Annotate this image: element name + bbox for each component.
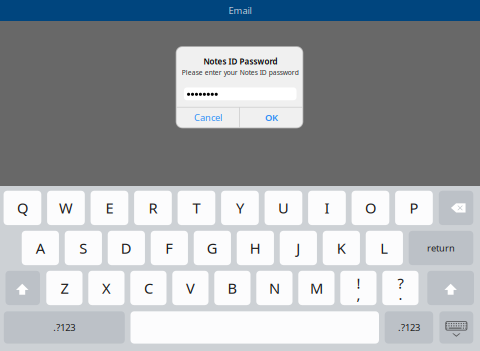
button[interactable]: X bbox=[88, 271, 124, 305]
button[interactable]: J bbox=[280, 231, 317, 265]
button[interactable]: Shift bbox=[427, 271, 474, 305]
staticText: Z bbox=[60, 278, 68, 298]
staticText: I bbox=[324, 198, 329, 218]
staticText: .?123 bbox=[398, 321, 420, 334]
staticText: B bbox=[227, 278, 237, 298]
button[interactable]: K bbox=[323, 231, 360, 265]
button[interactable]: R bbox=[134, 191, 172, 225]
button[interactable]: .?123 bbox=[385, 311, 433, 344]
staticText: O bbox=[365, 198, 376, 218]
staticText: Notes ID Password bbox=[203, 56, 277, 67]
button[interactable]: U bbox=[265, 191, 302, 225]
button[interactable]: Shift bbox=[5, 271, 40, 305]
button[interactable]: A bbox=[22, 231, 59, 265]
button[interactable]: return bbox=[409, 231, 473, 265]
button[interactable]: G bbox=[194, 231, 231, 265]
staticText: , bbox=[356, 285, 360, 304]
button[interactable]: .?123 bbox=[4, 311, 125, 344]
staticText: U bbox=[278, 198, 289, 218]
staticText: A bbox=[36, 238, 45, 258]
button[interactable]: OK bbox=[240, 107, 302, 127]
button[interactable]: T bbox=[178, 191, 215, 225]
staticText: Y bbox=[236, 198, 244, 218]
button[interactable]: I bbox=[308, 191, 346, 225]
button[interactable]: V bbox=[172, 271, 208, 305]
staticText: F bbox=[165, 238, 173, 258]
button[interactable]: Q bbox=[4, 191, 41, 225]
staticText: ? bbox=[397, 273, 403, 293]
button[interactable]: M bbox=[298, 271, 334, 305]
button[interactable] bbox=[130, 311, 379, 344]
staticText: .?123 bbox=[53, 321, 75, 334]
staticText: OK bbox=[265, 111, 278, 124]
staticText: Cancel bbox=[194, 111, 222, 124]
button[interactable]: C bbox=[130, 271, 166, 305]
staticText: ! bbox=[356, 273, 360, 293]
staticText: D bbox=[121, 238, 132, 258]
staticText: R bbox=[148, 198, 157, 218]
button[interactable]: ? bbox=[382, 271, 418, 305]
button[interactable]: H bbox=[237, 231, 274, 265]
button[interactable]: ! bbox=[340, 271, 376, 305]
staticText: C bbox=[144, 278, 153, 298]
staticText: S bbox=[79, 238, 87, 258]
staticText: Please enter your Notes ID password bbox=[182, 68, 299, 77]
button[interactable]: N bbox=[256, 271, 292, 305]
button[interactable]: P bbox=[395, 191, 433, 225]
staticText: H bbox=[250, 238, 261, 258]
button[interactable]: Y bbox=[221, 191, 259, 225]
staticText: X bbox=[102, 278, 111, 298]
staticText: P bbox=[409, 198, 418, 218]
button[interactable]: S bbox=[65, 231, 102, 265]
staticText: L bbox=[380, 238, 388, 258]
staticText: return bbox=[427, 242, 455, 254]
button[interactable]: O bbox=[352, 191, 389, 225]
button[interactable]: Hide Keyboard bbox=[439, 311, 473, 344]
staticText: . bbox=[398, 285, 402, 304]
staticText: W bbox=[59, 198, 73, 218]
staticText: E bbox=[105, 198, 113, 218]
staticText: N bbox=[269, 278, 280, 298]
button[interactable]: W bbox=[47, 191, 85, 225]
staticText: K bbox=[337, 238, 346, 258]
staticText: Q bbox=[17, 198, 28, 218]
button[interactable]: L bbox=[366, 231, 403, 265]
staticText: V bbox=[186, 278, 195, 298]
button[interactable]: Cancel bbox=[176, 107, 239, 127]
button[interactable]: Delete bbox=[439, 191, 473, 225]
staticText: G bbox=[207, 238, 218, 258]
staticText: Email bbox=[228, 4, 251, 17]
staticText: J bbox=[296, 238, 300, 258]
button[interactable]: D bbox=[108, 231, 145, 265]
button[interactable]: F bbox=[151, 231, 188, 265]
staticText: T bbox=[192, 198, 200, 218]
staticText: M bbox=[310, 278, 323, 298]
button[interactable]: E bbox=[91, 191, 128, 225]
button[interactable]: B bbox=[214, 271, 250, 305]
button[interactable]: Z bbox=[46, 271, 82, 305]
